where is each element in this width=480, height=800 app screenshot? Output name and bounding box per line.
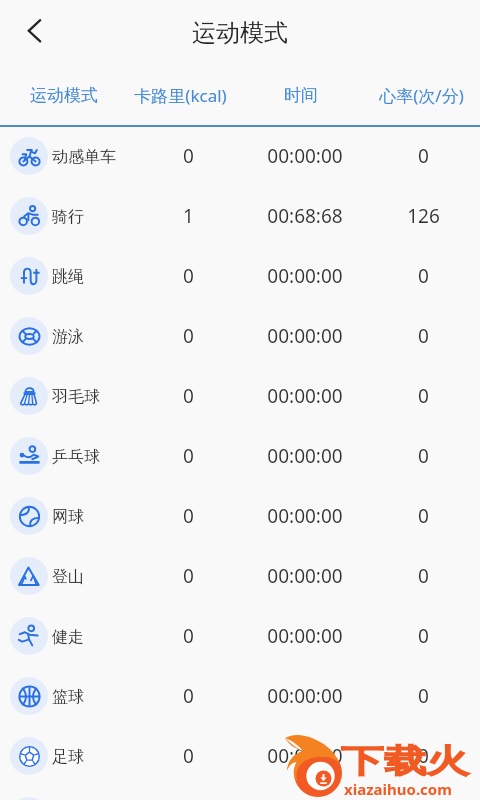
staticText: 0 xyxy=(183,743,194,769)
button[interactable]: 动感单车 xyxy=(0,126,480,186)
staticText: 0 xyxy=(183,323,194,349)
staticText: 网球 xyxy=(52,507,84,527)
button[interactable]: 游泳 xyxy=(0,306,480,366)
button[interactable]: 跳绳 xyxy=(0,246,480,306)
staticText: 00:68:68 xyxy=(267,203,343,229)
staticText: 健走 xyxy=(52,627,84,647)
staticText: 动感单车 xyxy=(52,147,116,167)
staticText: 00:00:00 xyxy=(267,323,343,349)
button[interactable]: 羽毛球 xyxy=(0,366,480,426)
staticText: 乒乓球 xyxy=(52,447,100,467)
staticText: 0 xyxy=(418,563,429,589)
staticText: 0 xyxy=(418,503,429,529)
button[interactable]: Back xyxy=(6,6,56,56)
button[interactable]: 篮球 xyxy=(0,666,480,726)
staticText: 0 xyxy=(418,143,429,169)
staticText: 下载火 xyxy=(341,741,469,781)
button[interactable]: 网球 xyxy=(0,486,480,546)
staticText: 跳绳 xyxy=(52,267,84,287)
staticText: xiazaihuo.com xyxy=(344,779,452,799)
staticText: 0 xyxy=(418,743,429,769)
button[interactable]: 登山 xyxy=(0,546,480,606)
button[interactable]: 运动模式 xyxy=(22,81,106,110)
staticText: 126 xyxy=(407,203,440,229)
staticText: 00:00:00 xyxy=(267,143,343,169)
staticText: 羽毛球 xyxy=(52,387,100,407)
staticText: 00:00:00 xyxy=(267,443,343,469)
staticText: 00:00:00 xyxy=(267,383,343,409)
staticText: 卡路里(kcal) xyxy=(134,84,227,107)
button[interactable]: 卡路里(kcal) xyxy=(126,80,235,111)
staticText: 0 xyxy=(183,563,194,589)
staticText: 0 xyxy=(418,263,429,289)
button[interactable]: 其他 xyxy=(0,786,480,800)
staticText: 运动模式 xyxy=(30,85,98,106)
staticText: 游泳 xyxy=(52,327,84,347)
staticText: 0 xyxy=(183,683,194,709)
staticText: 0 xyxy=(183,143,194,169)
staticText: 00:00:00 xyxy=(267,623,343,649)
button[interactable]: 时间 xyxy=(276,81,326,110)
staticText: 篮球 xyxy=(52,687,84,707)
staticText: 0 xyxy=(183,503,194,529)
button[interactable]: 健走 xyxy=(0,606,480,666)
staticText: 0 xyxy=(418,683,429,709)
button[interactable]: 足球 xyxy=(0,726,480,786)
staticText: 0 xyxy=(418,383,429,409)
staticText: 0 xyxy=(183,623,194,649)
staticText: 00:00:00 xyxy=(267,683,343,709)
button[interactable]: 骑行 xyxy=(0,186,480,246)
staticText: 0 xyxy=(183,443,194,469)
button[interactable]: 心率(次/分) xyxy=(371,80,472,111)
staticText: 00:00:00 xyxy=(267,263,343,289)
staticText: 0 xyxy=(418,443,429,469)
staticText: 足球 xyxy=(52,747,84,767)
staticText: 时间 xyxy=(284,85,318,106)
staticText: 0 xyxy=(418,323,429,349)
staticText: 00:00:00 xyxy=(267,743,343,769)
staticText: 0 xyxy=(183,263,194,289)
staticText: 00:00:00 xyxy=(267,503,343,529)
staticText: 1 xyxy=(183,203,194,229)
staticText: 运动模式 xyxy=(0,18,480,48)
staticText: 0 xyxy=(183,383,194,409)
staticText: 0 xyxy=(418,623,429,649)
staticText: 登山 xyxy=(52,567,84,587)
staticText: 00:00:00 xyxy=(267,563,343,589)
staticText: 心率(次/分) xyxy=(379,84,464,107)
staticText: 骑行 xyxy=(52,207,84,227)
button[interactable]: 乒乓球 xyxy=(0,426,480,486)
